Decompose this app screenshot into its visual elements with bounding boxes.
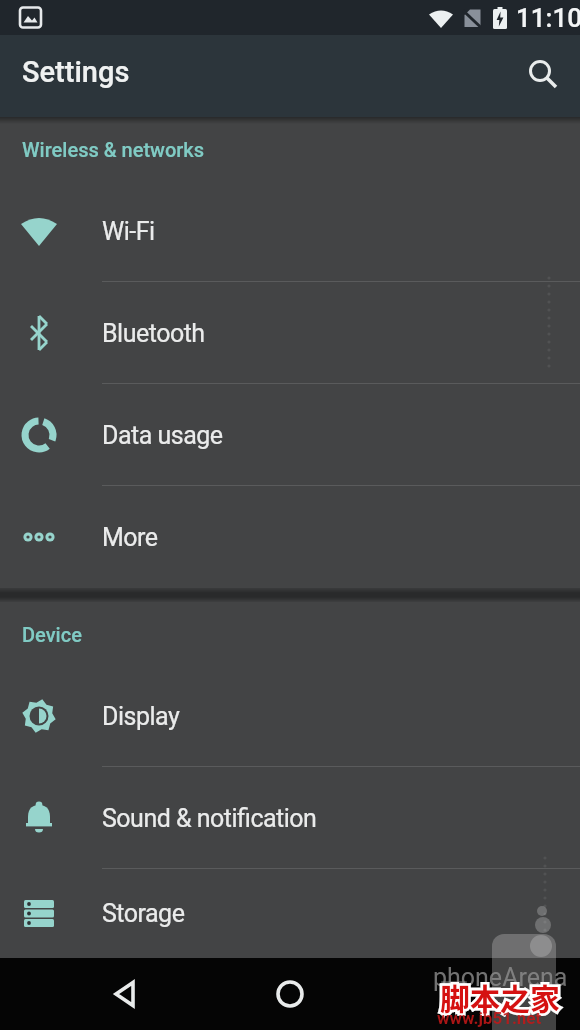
button[interactable]: Display <box>0 665 580 767</box>
staticText: phoneArena <box>433 963 568 992</box>
staticText: More <box>102 523 158 552</box>
button[interactable]: Wi-Fi <box>0 180 580 282</box>
staticText: Data usage <box>102 421 223 450</box>
staticText: 脚本之家 <box>440 975 560 1018</box>
button[interactable] <box>264 968 316 1020</box>
button[interactable]: Bluetooth <box>0 282 580 384</box>
staticText: Device <box>22 623 82 646</box>
staticText: 脚本之家 <box>440 975 560 1018</box>
staticText: Settings <box>22 55 130 89</box>
staticText: www.jb51.net <box>437 1008 542 1028</box>
button[interactable]: Storage <box>0 869 580 958</box>
button[interactable] <box>428 968 480 1020</box>
staticText: Storage <box>102 899 185 928</box>
staticText: Display <box>102 702 180 731</box>
staticText: 11:10 <box>516 3 580 33</box>
button[interactable] <box>99 968 151 1020</box>
staticText: Sound & notification <box>102 804 317 833</box>
button[interactable]: Data usage <box>0 384 580 486</box>
staticText: Wireless & networks <box>22 138 205 161</box>
button[interactable]: More <box>0 486 580 588</box>
button[interactable]: Sound & notification <box>0 767 580 869</box>
button[interactable] <box>520 52 568 100</box>
staticText: Bluetooth <box>102 319 205 348</box>
staticText: Wi-Fi <box>102 217 155 246</box>
